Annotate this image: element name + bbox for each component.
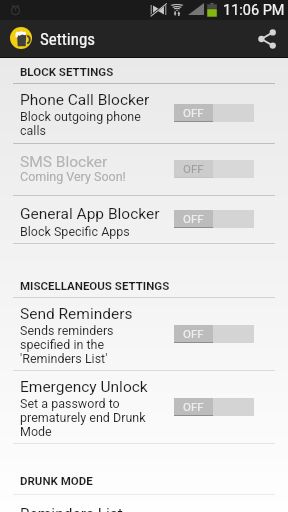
staticText: OFF (183, 106, 204, 119)
button[interactable]: Reminders List (0, 494, 288, 512)
staticText: 11:06 PM (223, 2, 285, 19)
button[interactable]: Share (246, 20, 288, 57)
button[interactable]: Phone Call Blocker (0, 83, 288, 143)
button[interactable]: Emergency Unlock (0, 370, 288, 443)
staticText: Emergency Unlock (20, 378, 148, 396)
staticText: BLOCK SETTINGS (20, 65, 114, 78)
staticText: OFF (183, 327, 204, 340)
staticText: MISCELLANEOUS SETTINGS (20, 279, 170, 292)
staticText: Sends reminders specified in the 'Remind… (20, 323, 114, 366)
staticText: Send Reminders (20, 305, 133, 323)
staticText: Block outgoing phone calls (20, 109, 141, 138)
button[interactable]: SMS Blocker (0, 143, 288, 195)
staticText: Block Specific Apps (20, 224, 130, 239)
staticText: Settings (40, 29, 96, 49)
staticText: OFF (183, 212, 204, 225)
staticText: Reminders List (20, 505, 123, 512)
staticText: OFF (183, 162, 204, 175)
button[interactable]: General App Blocker (0, 195, 288, 243)
button[interactable]: Send Reminders (0, 297, 288, 370)
staticText: OFF (183, 400, 204, 413)
staticText: Phone Call Blocker (20, 91, 150, 109)
staticText: General App Blocker (20, 205, 160, 223)
staticText: SMS Blocker (20, 153, 108, 171)
staticText: Set a password to prematurely end Drunk … (20, 396, 146, 439)
staticText: Coming Very Soon! (20, 169, 126, 184)
staticText: DRUNK MODE (20, 474, 93, 487)
